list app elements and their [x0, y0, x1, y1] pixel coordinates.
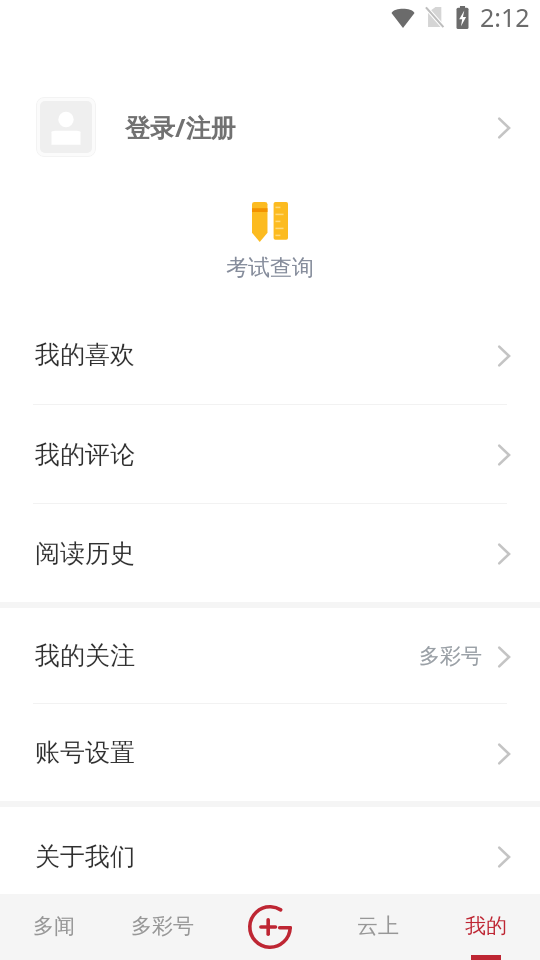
staticText: 关于我们 [35, 841, 135, 872]
staticText: 我的关注 [35, 640, 135, 671]
button[interactable]: 阅读历史 [0, 504, 540, 602]
staticText: 2:12 [480, 0, 530, 34]
button[interactable]: 登录/注册 [0, 97, 540, 157]
button[interactable]: 我的喜欢 [0, 305, 540, 404]
staticText: 云上 [357, 913, 399, 939]
staticText: 多闻 [33, 913, 75, 939]
button[interactable]: 我的 [432, 894, 540, 960]
button[interactable]: 考试查询 [206, 199, 334, 285]
button[interactable]: 账号设置 [0, 704, 540, 801]
staticText: 登录/注册 [125, 110, 236, 144]
staticText: 我的 [465, 913, 507, 939]
staticText: 我的评论 [35, 439, 135, 470]
staticText: 考试查询 [226, 254, 314, 282]
staticText: 多彩号 [419, 643, 482, 669]
staticText: 阅读历史 [35, 538, 135, 569]
button[interactable]: 多彩号 [108, 894, 216, 960]
staticText: 账号设置 [35, 737, 135, 768]
button[interactable]: 关于我们 [0, 807, 540, 905]
staticText: 我的喜欢 [35, 339, 135, 370]
button[interactable]: 发布 [216, 894, 324, 960]
staticText: 多彩号 [131, 913, 194, 939]
button[interactable]: 我的评论 [0, 405, 540, 503]
button[interactable]: 多闻 [0, 894, 108, 960]
button[interactable]: 云上 [324, 894, 432, 960]
button[interactable]: 我的关注 [0, 608, 540, 703]
